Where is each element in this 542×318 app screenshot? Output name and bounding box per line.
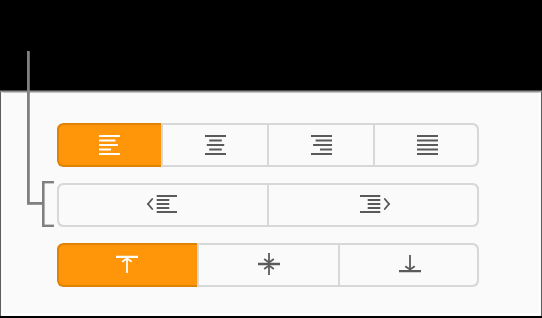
- button[interactable]: Align left: [57, 123, 161, 167]
- button[interactable]: Decrease indent: [57, 183, 267, 227]
- button[interactable]: Increase indent: [269, 183, 479, 227]
- button[interactable]: Align center: [163, 123, 267, 167]
- button[interactable]: Align bottom: [340, 243, 479, 287]
- button[interactable]: Align top: [57, 243, 197, 287]
- button[interactable]: Align right: [269, 123, 373, 167]
- button[interactable]: Align middle: [199, 243, 338, 287]
- button[interactable]: Justify: [375, 123, 479, 167]
